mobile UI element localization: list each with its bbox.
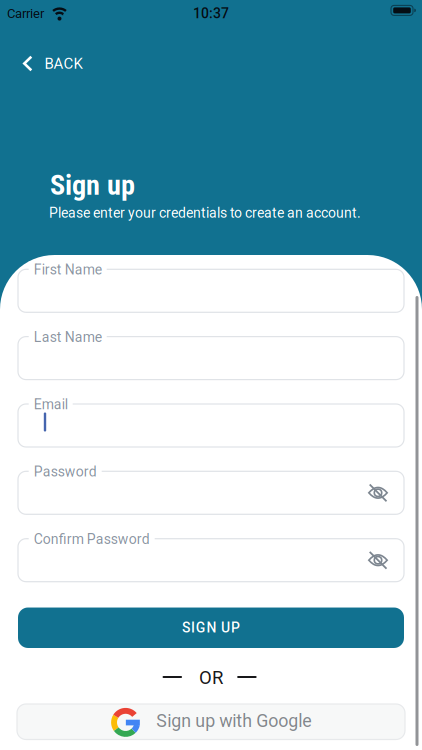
staticText: Password <box>34 464 97 480</box>
staticText: BACK <box>45 55 83 72</box>
staticText: Last Name <box>34 329 102 345</box>
staticText: Sign up <box>50 168 135 202</box>
staticText: Please enter your credentials to create … <box>49 205 361 221</box>
staticText: SIGN UP <box>182 619 240 636</box>
staticText: OR <box>199 667 223 688</box>
button[interactable]: First Name <box>18 260 404 312</box>
button[interactable]: Password <box>18 462 404 514</box>
staticText: Sign up with Google <box>156 710 311 731</box>
staticText: 10:37 <box>193 5 229 22</box>
button[interactable]: Sign up with Google <box>17 704 405 739</box>
button[interactable]: Last Name <box>18 328 404 380</box>
staticText: Email <box>34 396 68 413</box>
button[interactable]: Email <box>18 395 404 447</box>
staticText: Carrier <box>7 6 44 21</box>
staticText: Confirm Password <box>34 531 150 547</box>
button[interactable]: SIGN UP <box>18 607 404 648</box>
button[interactable]: Toggle Confirm Password visibility <box>358 540 398 580</box>
staticText: First Name <box>34 262 102 278</box>
button[interactable]: Back <box>0 45 95 81</box>
button[interactable]: Toggle Password visibility <box>358 473 398 513</box>
button[interactable]: Confirm Password <box>18 530 404 582</box>
